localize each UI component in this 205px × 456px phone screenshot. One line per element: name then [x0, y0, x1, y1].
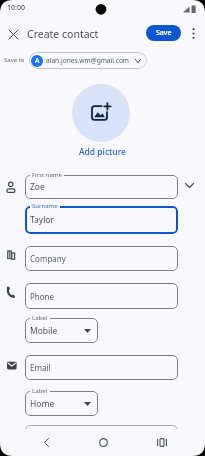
- button[interactable]: [95, 434, 111, 450]
- staticText: Taylor: [30, 214, 54, 226]
- staticText: Company: [30, 253, 66, 264]
- staticText: Create contact: [27, 27, 99, 41]
- staticText: First name: [32, 171, 62, 179]
- staticText: Mobile: [30, 325, 58, 337]
- button[interactable]: Save: [146, 25, 181, 41]
- button[interactable]: Mobile: [25, 318, 98, 343]
- staticText: Label: [32, 314, 48, 322]
- staticText: Label: [32, 387, 48, 395]
- button[interactable]: Zoe: [25, 175, 178, 199]
- button[interactable]: Phone: [25, 283, 178, 309]
- button[interactable]: Home: [25, 391, 98, 416]
- staticText: Home: [30, 398, 55, 410]
- button[interactable]: Email: [25, 355, 178, 380]
- button[interactable]: [72, 84, 130, 142]
- staticText: Zoe: [30, 181, 45, 193]
- button[interactable]: [154, 434, 170, 450]
- staticText: alan.jones.wm@gmail.com: [46, 56, 130, 65]
- staticText: Phone: [30, 291, 55, 302]
- button[interactable]: [38, 434, 54, 450]
- staticText: 10:00: [7, 3, 25, 13]
- staticText: A: [35, 56, 40, 66]
- button[interactable]: Add picture: [79, 146, 126, 158]
- staticText: Save: [156, 28, 172, 38]
- staticText: Surname: [32, 202, 58, 210]
- button[interactable]: [187, 26, 199, 41]
- button[interactable]: [182, 178, 196, 192]
- button[interactable]: A: [29, 52, 147, 69]
- staticText: Email: [30, 362, 51, 373]
- staticText: Save to: [4, 56, 25, 64]
- button[interactable]: Taylor: [25, 206, 178, 234]
- button[interactable]: [6, 27, 20, 41]
- button[interactable]: Company: [25, 246, 178, 271]
